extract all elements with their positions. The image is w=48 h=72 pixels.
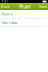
staticText: Start date xyxy=(1,20,17,25)
button[interactable]: Save xyxy=(38,4,48,9)
staticText: Plan xyxy=(19,3,30,10)
staticText: Name xyxy=(1,11,12,17)
staticText: 9:41 xyxy=(1,0,8,3)
staticText: Save xyxy=(39,4,47,9)
staticText: Back xyxy=(1,4,10,9)
button[interactable]: Back xyxy=(0,4,11,9)
